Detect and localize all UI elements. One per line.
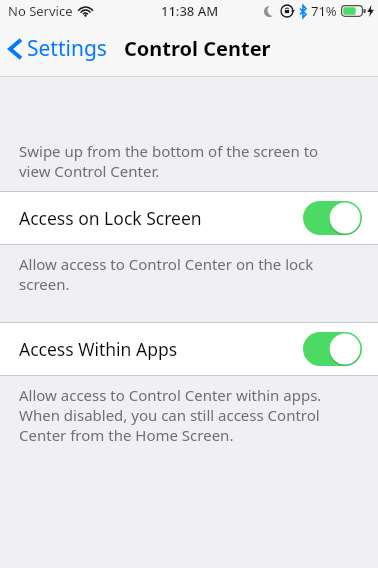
staticText: 11:38 AM: [161, 2, 219, 20]
staticText: Access Within Apps: [19, 337, 178, 361]
button[interactable]: On: [303, 201, 362, 235]
button[interactable]: Settings: [0, 30, 115, 67]
staticText: Access on Lock Screen: [19, 206, 202, 230]
staticText: Settings: [27, 34, 107, 63]
staticText: 71%: [311, 2, 337, 20]
button[interactable]: On: [303, 332, 362, 366]
staticText: Allow access to Control Center within ap…: [19, 385, 356, 445]
button[interactable]: Access Within Apps: [0, 323, 378, 375]
staticText: No Service: [8, 2, 73, 20]
staticText: Swipe up from the bottom of the screen t…: [19, 141, 348, 181]
staticText: Control Center: [124, 35, 271, 62]
button[interactable]: Access on Lock Screen: [0, 192, 378, 244]
staticText: Allow access to Control Center on the lo…: [19, 254, 356, 294]
